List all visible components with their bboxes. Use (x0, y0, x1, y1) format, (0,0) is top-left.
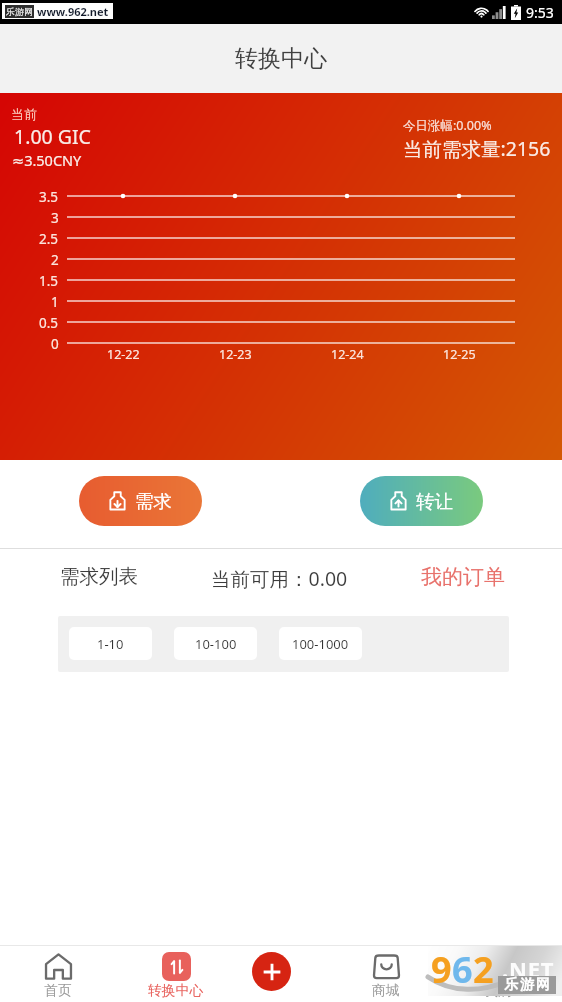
staticText: 2.5 (39, 230, 59, 246)
staticText: 商城 (372, 982, 400, 999)
staticText: 100-1000 (292, 635, 349, 653)
staticText: 9:53 (526, 3, 554, 22)
staticText: 0.5 (39, 314, 59, 330)
staticText: 乐游网 (6, 6, 33, 17)
staticText: 12-25 (443, 346, 476, 363)
staticText: 1.00 GIC (14, 123, 91, 150)
staticText: 转让 (416, 490, 453, 513)
staticText: 12-22 (107, 346, 140, 363)
staticText: 3 (51, 209, 59, 225)
staticText: 10-100 (195, 635, 237, 653)
button[interactable]: 需求列表 (60, 564, 138, 589)
staticText: 需求列表 (60, 564, 138, 589)
staticText: 1 (51, 293, 59, 309)
button[interactable]: 10-100 (174, 627, 257, 660)
staticText: 我的订单 (421, 564, 505, 590)
staticText: 6 (452, 945, 473, 994)
staticText: 当前可用：0.00 (211, 565, 348, 592)
button[interactable]: 首页 (18, 946, 98, 999)
staticText: 1-10 (97, 635, 124, 653)
staticText: 今日涨幅:0.00% (403, 117, 492, 134)
button[interactable]: 商城 (346, 946, 426, 999)
button[interactable]: 1-10 (69, 627, 152, 660)
staticText: 需求 (135, 490, 172, 513)
staticText: 当前 (11, 106, 37, 122)
button[interactable]: 需求 (79, 476, 202, 526)
staticText: 乐游网 (503, 976, 551, 994)
staticText: 2 (51, 251, 59, 267)
staticText: .NET (502, 954, 555, 984)
staticText: 12-24 (331, 346, 364, 363)
staticText: ≈3.50CNY (12, 150, 82, 170)
staticText: www.962.net (37, 4, 109, 19)
staticText: 首页 (44, 982, 72, 999)
staticText: 我的 (484, 982, 512, 999)
staticText: 0 (51, 335, 59, 351)
staticText: 1.5 (39, 272, 59, 288)
button[interactable]: 我的订单 (421, 564, 505, 590)
button[interactable]: 100-1000 (279, 627, 362, 660)
staticText: 转换中心 (235, 44, 327, 73)
button[interactable]: 转让 (360, 476, 483, 526)
staticText: 9 (431, 945, 452, 994)
staticText: 12-23 (219, 346, 252, 363)
button[interactable]: 转换中心 (136, 946, 216, 999)
staticText: 当前需求量:2156 (403, 135, 551, 162)
staticText: 2 (473, 945, 494, 994)
button[interactable]: Add (252, 952, 291, 991)
staticText: 转换中心 (148, 982, 204, 999)
staticText: 3.5 (39, 188, 59, 204)
button[interactable]: 我的 (458, 946, 538, 999)
